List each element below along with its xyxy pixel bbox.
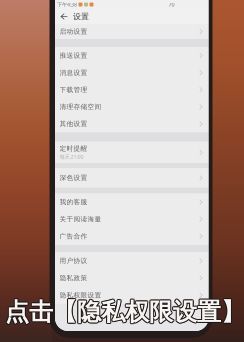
button[interactable]: 推送设置 [55,47,208,64]
button[interactable]: Back [60,13,68,20]
staticText: 点击【隐私权限设置】 [4,296,244,326]
button[interactable]: 消息设置 [55,64,208,81]
staticText: 隐私政策 [59,274,87,282]
button[interactable]: 隐私政策 [55,269,208,287]
staticText: 深色设置 [59,174,87,182]
staticText: 清理存储空间 [59,103,101,111]
staticText: 下午4:38 [57,1,77,8]
staticText: 每天 21:00 [59,153,83,160]
staticText: 广告合作 [59,232,87,240]
button[interactable]: 其他设置 [55,115,208,132]
button[interactable]: 关于阅读海量 [55,211,208,228]
staticText: 关于阅读海量 [59,215,101,223]
staticText: 点击【隐私权限设置】 [5,297,244,327]
staticText: 消息设置 [59,69,87,77]
staticText: 点击【隐私权限设置】 [5,298,244,328]
staticText: 点击【隐私权限设置】 [5,296,244,326]
staticText: 点击【隐私权限设置】 [6,296,244,326]
button[interactable]: 定时提醒 [55,142,208,163]
button[interactable]: 清理存储空间 [55,98,208,115]
staticText: 点击【隐私权限设置】 [4,297,244,327]
button[interactable]: 下载管理 [55,81,208,98]
staticText: 隐私权限设置 [59,291,101,299]
staticText: 点击【隐私权限设置】 [4,298,244,328]
staticText: 启动设置 [59,27,87,36]
button[interactable]: 用户协议 [55,252,208,269]
button[interactable]: 广告合作 [55,228,208,245]
staticText: 70 [168,1,174,8]
button[interactable]: 启动设置 [55,24,208,39]
staticText: 定时提醒 [59,144,87,153]
staticText: 推送设置 [59,51,87,60]
staticText: 设置 [73,12,89,21]
staticText: 点击【隐私权限设置】 [6,298,244,328]
button[interactable]: 我的客服 [55,194,208,211]
staticText: 我的客服 [59,198,87,206]
staticText: 下载管理 [59,86,87,94]
button[interactable]: 深色设置 [55,168,208,188]
staticText: 其他设置 [59,120,87,128]
button[interactable]: 隐私权限设置 [55,287,208,304]
staticText: 用户协议 [59,257,87,265]
staticText: 点击【隐私权限设置】 [6,297,244,327]
